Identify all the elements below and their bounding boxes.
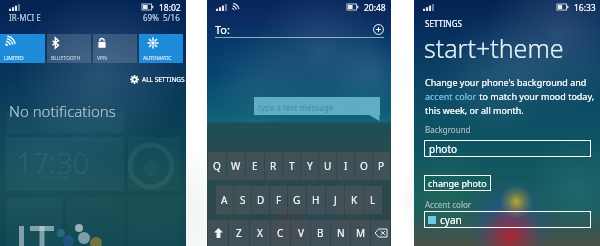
staticText: AUTOMATIC [143,55,172,62]
staticText: 17:30 [16,143,90,182]
staticText: 18:02 [159,2,181,14]
button[interactable]: A [216,186,233,214]
staticText: D [257,193,265,207]
staticText: H [312,193,320,207]
button[interactable]: AUTOMATIC [139,34,183,63]
staticText: Change your phone's background and [425,76,587,88]
staticText: change photo [428,177,487,189]
staticText: accent color [425,90,477,102]
staticText: K [351,193,358,207]
staticText: BLUETOOTH [51,55,81,62]
button[interactable]: R [265,152,282,180]
staticText: V [298,226,304,240]
button[interactable]: Q [208,152,226,180]
button[interactable]: Add recipient [373,24,384,35]
staticText: monday [42,173,69,183]
button[interactable]: Z [229,220,249,246]
staticText: 20:48 [364,2,386,14]
button[interactable]: C [271,220,290,246]
button[interactable]: U [319,152,336,180]
button[interactable]: L [364,186,382,214]
staticText: C [277,226,284,240]
button[interactable]: M [351,220,370,246]
staticText: VPN [97,55,107,62]
staticText: W [231,159,241,173]
button[interactable]: P [373,152,390,180]
staticText: To: [215,22,230,37]
button[interactable]: S [234,186,251,214]
button[interactable]: I [337,152,354,180]
staticText: Z [236,226,242,240]
button[interactable]: V [291,220,310,246]
staticText: A [221,193,228,207]
staticText: U [324,159,332,173]
button[interactable]: T [283,152,300,180]
staticText: ALL SETTINGS [142,75,185,84]
staticText: Y [307,159,313,173]
staticText: to match your mood today, [477,90,595,102]
staticText: Background [425,124,471,135]
button[interactable]: H [307,186,325,214]
button[interactable]: LIMITED [0,34,45,63]
staticText: G [293,193,301,207]
button[interactable]: cyan [424,211,591,228]
staticText: this week, or all month. [425,104,524,116]
button[interactable]: photo [424,140,591,157]
staticText: SETTINGS [425,18,462,29]
button[interactable]: N [331,220,350,246]
staticText: L [370,193,376,207]
staticText: LIMITED [4,55,24,62]
staticText: X [257,226,263,240]
button[interactable]: change photo [424,175,491,191]
staticText: R [270,159,277,173]
staticText: 5/16 [163,12,180,23]
staticText: M [356,226,366,240]
button[interactable]: X [250,220,270,246]
button[interactable]: K [345,186,363,214]
button[interactable]: F [270,186,287,214]
button[interactable]: Backspace [371,220,390,246]
staticText: E [252,159,258,173]
button[interactable]: D [252,186,269,214]
button[interactable]: Y [301,152,318,180]
button[interactable]: O [355,152,372,180]
staticText: photo [429,142,458,156]
staticText: IR-MCI E [9,12,41,23]
button[interactable]: G [288,186,306,214]
button[interactable]: W [227,152,245,180]
staticText: I [344,159,348,173]
staticText: S [240,193,246,207]
staticText: J [334,193,337,207]
button[interactable]: J [326,186,344,214]
staticText: No notifications [9,101,116,121]
button[interactable]: ALL SETTINGS [130,75,185,84]
button[interactable]: VPN [93,34,137,63]
staticText: B [317,226,324,240]
staticText: N [337,226,345,240]
button[interactable]: E [246,152,264,180]
staticText: type a text message [258,102,334,113]
button[interactable]: B [311,220,330,246]
staticText: P [378,159,385,173]
staticText: Q [213,159,221,173]
button[interactable]: BLUETOOTH [47,34,91,63]
staticText: 69% [143,12,159,23]
staticText: O [360,159,368,173]
staticText: start+theme [424,31,564,65]
staticText: T [289,159,295,173]
staticText: F [276,193,282,207]
staticText: cyan [440,213,462,227]
button[interactable]: Shift [208,220,228,246]
staticText: Accent color [425,199,472,210]
staticText: 16:33 [574,2,596,14]
